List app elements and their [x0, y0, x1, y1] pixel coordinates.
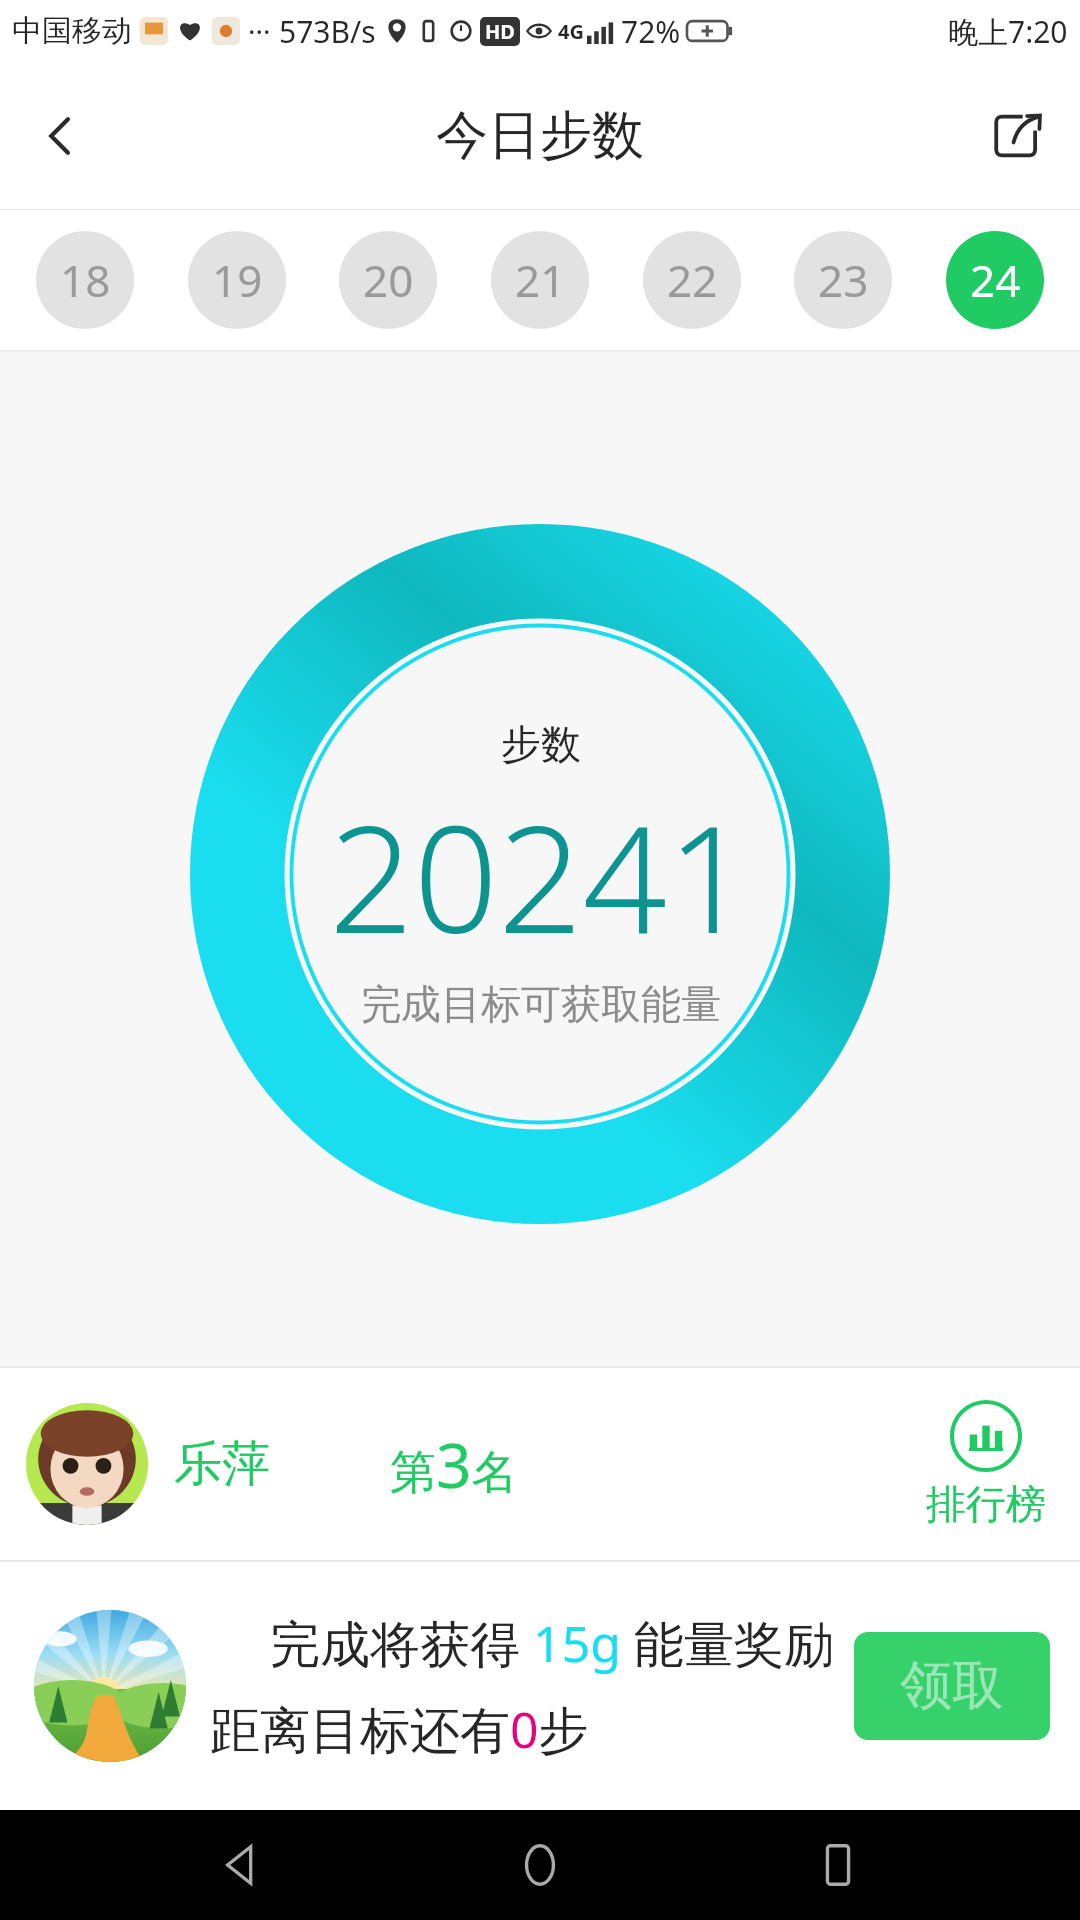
staticText: HD: [485, 18, 515, 45]
staticText: 中国移动: [12, 12, 132, 50]
staticText: 乐萍: [174, 1434, 270, 1494]
button[interactable]: 排行榜: [922, 1395, 1050, 1533]
button[interactable]: 21: [491, 231, 589, 329]
staticText: 晚上7:20: [948, 11, 1068, 52]
staticText: 完成目标可获取能量: [361, 979, 721, 1029]
staticText: 距离目标还有0步: [210, 1695, 834, 1763]
button[interactable]: Back: [188, 1810, 298, 1920]
staticText: 23: [818, 250, 869, 310]
staticText: 72%: [621, 11, 681, 52]
staticText: 21: [515, 250, 566, 310]
button[interactable]: Share: [960, 76, 1080, 196]
button[interactable]: 24: [946, 231, 1044, 329]
button[interactable]: Home: [485, 1810, 595, 1920]
button[interactable]: 23: [794, 231, 892, 329]
staticText: ···: [248, 12, 271, 50]
staticText: 573B/s: [279, 11, 376, 52]
staticText: 4G: [558, 18, 584, 45]
button[interactable]: 领取: [854, 1632, 1050, 1740]
staticText: 步数: [501, 719, 581, 769]
button[interactable]: 20: [339, 231, 437, 329]
staticText: 20: [363, 250, 414, 310]
staticText: 19: [212, 250, 263, 310]
staticText: 领取: [900, 1653, 1004, 1719]
button[interactable]: 22: [643, 231, 741, 329]
staticText: 22: [667, 250, 718, 310]
staticText: 今日步数: [436, 103, 644, 169]
staticText: 完成将获得 15g 能量奖励: [210, 1609, 834, 1677]
staticText: 24: [970, 250, 1021, 310]
button[interactable]: Back: [0, 76, 120, 196]
button[interactable]: 18: [36, 231, 134, 329]
staticText: 18: [60, 250, 111, 310]
button[interactable]: 19: [188, 231, 286, 329]
button[interactable]: 乐萍: [0, 1368, 1080, 1560]
staticText: 第3名: [390, 1422, 518, 1506]
staticText: 20241: [329, 775, 752, 977]
staticText: 排行榜: [926, 1479, 1046, 1529]
button[interactable]: Recents: [783, 1810, 893, 1920]
